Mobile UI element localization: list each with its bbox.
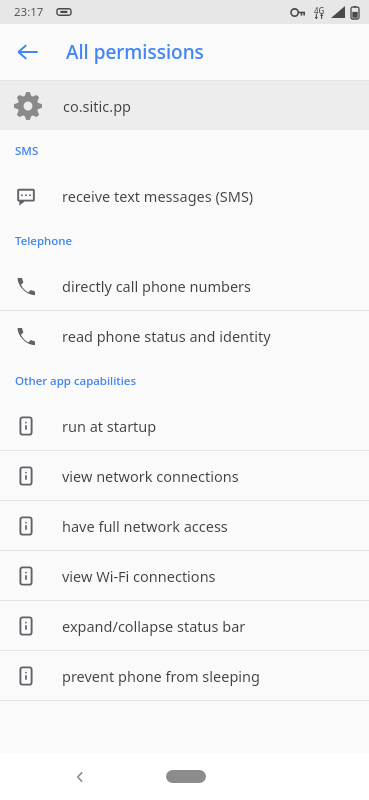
staticText: SMS xyxy=(15,143,39,159)
staticText: receive text messages (SMS) xyxy=(62,186,254,206)
button[interactable]: directly call phone numbers xyxy=(0,261,369,310)
button[interactable]: Back xyxy=(6,30,50,74)
staticText: read phone status and identity xyxy=(62,326,271,346)
button[interactable]: prevent phone from sleeping xyxy=(0,651,369,700)
button[interactable]: read phone status and identity xyxy=(0,311,369,360)
button[interactable]: receive text messages (SMS) xyxy=(0,171,369,220)
staticText: prevent phone from sleeping xyxy=(62,666,260,686)
staticText: 23:17 xyxy=(14,4,44,20)
staticText: Telephone xyxy=(15,233,73,249)
staticText: view network connections xyxy=(62,466,239,486)
staticText: co.sitic.pp xyxy=(63,96,131,116)
staticText: Other app capabilities xyxy=(15,373,136,389)
button[interactable]: Home xyxy=(166,770,206,783)
button[interactable]: have full network access xyxy=(0,501,369,550)
button[interactable]: run at startup xyxy=(0,401,369,450)
button[interactable]: expand/collapse status bar xyxy=(0,601,369,650)
button[interactable]: Back xyxy=(62,759,98,795)
staticText: run at startup xyxy=(62,416,157,436)
button[interactable]: view Wi-Fi connections xyxy=(0,551,369,600)
staticText: expand/collapse status bar xyxy=(62,616,246,636)
staticText: 4G xyxy=(314,5,325,16)
staticText: view Wi-Fi connections xyxy=(62,566,216,586)
staticText: directly call phone numbers xyxy=(62,276,252,296)
staticText: All permissions xyxy=(66,39,204,65)
button[interactable]: view network connections xyxy=(0,451,369,500)
button[interactable]: co.sitic.pp xyxy=(0,81,369,130)
staticText: have full network access xyxy=(62,516,228,536)
